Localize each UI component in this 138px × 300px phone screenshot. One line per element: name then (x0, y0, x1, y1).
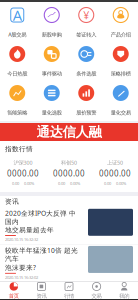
staticText: 2020全球IPO大反弹 中国内 (5, 209, 76, 226)
staticText: 首页 (9, 293, 19, 299)
staticText: 地交易量超去年 (5, 226, 54, 234)
button[interactable]: A (0, 3, 34, 42)
staticText: 股价预警 (76, 109, 96, 116)
button[interactable]: 量化选股 (34, 81, 69, 120)
staticText: 0000.00 (53, 168, 85, 179)
staticText: 泡沫要来? (5, 263, 36, 272)
staticText: A股交易 (8, 31, 26, 38)
button[interactable]: 行情 (55, 282, 83, 299)
button[interactable]: 智能策略 (0, 81, 34, 120)
staticText: 0.00% (24, 181, 34, 186)
staticText: 0.00 (12, 181, 19, 186)
staticText: ¥ (83, 8, 89, 22)
staticText: 产品介绍 (111, 31, 131, 38)
button[interactable]: 股价预警 (69, 81, 103, 120)
staticText: 行情 (64, 293, 74, 299)
staticText: 资讯 (36, 293, 46, 299)
staticText: 量化交易 (111, 109, 131, 116)
staticText: 2020-10-15 16:32:32 (5, 237, 38, 242)
staticText: 较欧半年猛涨10倍 超光汽车 (5, 246, 78, 263)
staticText: 资讯 (5, 197, 19, 206)
button[interactable]: 我的 (110, 282, 138, 299)
button[interactable]: ¥ (69, 3, 103, 42)
button[interactable]: 2020全球IPO大反弹 中国内 (0, 207, 138, 244)
button[interactable]: 新股申购 (34, 3, 69, 42)
staticText: 智能策略 (7, 109, 27, 116)
staticText: 事件驱动 (42, 70, 62, 77)
button[interactable]: 科创50 (46, 159, 92, 186)
staticText: 科创50 (61, 159, 77, 166)
staticText: 量化选股 (42, 109, 62, 116)
staticText: 沪深300 (13, 159, 32, 166)
button[interactable]: 策略排榜 (103, 42, 138, 81)
button[interactable]: 产品介绍 (103, 3, 138, 42)
button[interactable]: 沪深300 (0, 159, 46, 186)
button[interactable]: 量化交易 (103, 81, 138, 120)
staticText: 签证转入 (76, 31, 96, 38)
button[interactable]: 资讯 (28, 282, 55, 299)
staticText: 条件选股 (76, 70, 96, 77)
staticText: 0.00 (104, 181, 111, 186)
staticText: 2020-10-15 16:32:02 (5, 275, 38, 280)
button[interactable]: 首页 (0, 282, 28, 299)
button[interactable]: 交易 (83, 282, 110, 299)
staticText: 策略排榜 (111, 70, 131, 77)
button[interactable]: 事件驱动 (34, 42, 69, 81)
staticText: 0.00% (116, 181, 126, 186)
staticText: 通达信人融 (36, 124, 101, 140)
staticText: 上证50 (107, 159, 123, 166)
button[interactable]: 上证50 (92, 159, 138, 186)
staticText: 我的 (119, 293, 129, 299)
staticText: 交易 (92, 293, 102, 299)
button[interactable]: 今日热股 (0, 42, 34, 81)
staticText: 0.00 (58, 181, 65, 186)
staticText: 0000.00 (99, 168, 131, 179)
staticText: 今日热股 (7, 70, 27, 77)
staticText: 指数行情 (5, 145, 33, 153)
staticText: A (13, 5, 22, 25)
staticText: 新股申购 (42, 31, 62, 38)
button[interactable]: 条件选股 (69, 42, 103, 81)
staticText: 0000.00 (7, 168, 39, 179)
staticText: 0.00% (70, 181, 80, 186)
button[interactable]: 较欧半年猛涨10倍 超光汽车 (0, 244, 138, 281)
